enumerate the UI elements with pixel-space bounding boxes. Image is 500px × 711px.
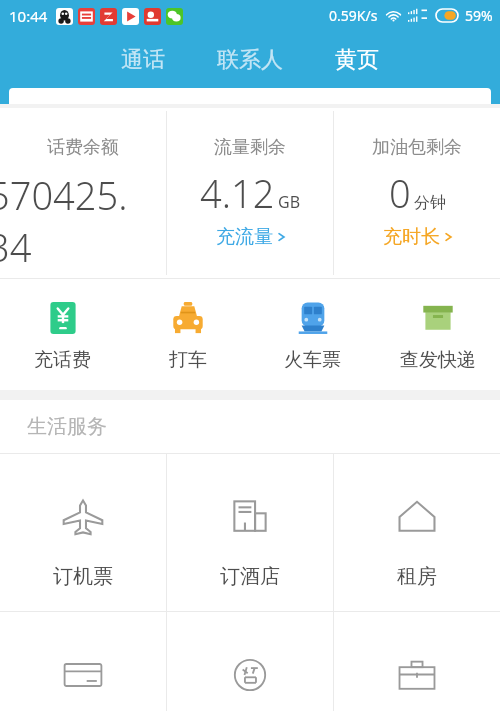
staticText: GB <box>278 191 301 213</box>
staticText: 充流量 <box>216 225 273 249</box>
button[interactable]: 流量剩余 <box>167 108 333 278</box>
staticText: 生活服务 <box>27 414 107 439</box>
staticText: 流量剩余 <box>214 136 286 159</box>
button[interactable]: 订机票 <box>0 454 166 611</box>
button[interactable]: 打车 <box>125 279 250 390</box>
staticText: 打车 <box>169 348 207 372</box>
button[interactable]: 找工作 <box>334 612 500 711</box>
staticText: 订机票 <box>53 564 113 589</box>
button[interactable]: 通话 <box>113 36 173 84</box>
staticText: 570425. <box>0 169 128 221</box>
button[interactable]: 信用卡 <box>0 612 166 711</box>
button[interactable]: 话费余额 <box>0 108 166 278</box>
staticText: 火车票 <box>284 348 341 372</box>
button[interactable]: 黄页 <box>327 36 387 84</box>
staticText: 订酒店 <box>220 564 280 589</box>
staticText: 10:44 <box>9 6 48 26</box>
staticText: 通话 <box>121 46 165 74</box>
staticText: 联系人 <box>217 46 283 74</box>
staticText: 34 <box>0 221 32 273</box>
button[interactable]: 充话费 <box>0 279 125 390</box>
staticText: 黄页 <box>335 46 379 74</box>
button[interactable]: 加油包剩余 <box>334 108 500 278</box>
staticText: 充话费 <box>34 348 91 372</box>
staticText: 0.59K/s <box>329 6 378 25</box>
button[interactable]: 搜索 <box>9 88 491 104</box>
button[interactable]: 查发快递 <box>375 279 500 390</box>
staticText: 0 <box>389 167 411 219</box>
button[interactable]: 贷款 <box>167 612 333 711</box>
staticText: 分钟 <box>414 193 446 213</box>
button[interactable]: 联系人 <box>209 36 291 84</box>
staticText: 4.12 <box>200 167 275 219</box>
staticText: 59% <box>465 6 493 25</box>
staticText: 话费余额 <box>47 136 119 159</box>
staticText: 查发快递 <box>400 348 476 372</box>
button[interactable]: 订酒店 <box>167 454 333 611</box>
button[interactable]: 火车票 <box>250 279 375 390</box>
staticText: 充时长 <box>383 225 440 249</box>
button[interactable]: 租房 <box>334 454 500 611</box>
staticText: 加油包剩余 <box>372 136 462 159</box>
staticText: 租房 <box>397 564 437 589</box>
